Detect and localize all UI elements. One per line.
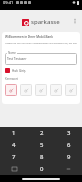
button[interactable]: PIN digit 3: [35, 84, 47, 96]
button[interactable]: 8: [28, 151, 55, 163]
staticText: Test Testuser: [7, 57, 27, 61]
button[interactable]: 2: [28, 127, 55, 139]
staticText: sparkasse: [31, 18, 60, 26]
button[interactable]: [0, 163, 28, 175]
button[interactable]: 0: [28, 163, 55, 175]
staticText: 5: [40, 141, 44, 149]
staticText: 6: [67, 141, 71, 149]
button[interactable]: PIN digit 5: [65, 84, 77, 96]
button[interactable]: 9: [55, 151, 82, 163]
staticText: 4: [12, 141, 16, 149]
staticText: 7: [12, 153, 16, 161]
staticText: 09:41: [3, 0, 14, 5]
staticText: 3: [67, 129, 71, 137]
button[interactable]: 5: [28, 139, 55, 151]
button[interactable]: 6: [55, 139, 82, 151]
button[interactable]: PIN digit 1: [5, 84, 17, 96]
staticText: Loggen Sie sich mit Ihrem Anmeldenamen u…: [5, 42, 77, 45]
button[interactable]: 3: [55, 127, 82, 139]
button[interactable]: 4: [0, 139, 28, 151]
button[interactable]: Hızlı Giriş: [5, 68, 26, 73]
button[interactable]: 1: [0, 127, 28, 139]
staticText: Willkommen in Ihrer Mobil-Bank: [5, 35, 53, 39]
button[interactable]: Test Testuser: [5, 53, 77, 65]
staticText: 1: [12, 129, 16, 137]
staticText: Kennwort: [5, 77, 18, 81]
staticText: 9: [67, 153, 71, 161]
staticText: Name: [8, 51, 16, 55]
staticText: 0: [40, 165, 44, 173]
button[interactable]: More options: [71, 17, 79, 25]
button[interactable]: [55, 163, 82, 175]
button[interactable]: PIN digit 4: [50, 84, 62, 96]
staticText: 2: [40, 129, 44, 137]
button[interactable]: 7: [0, 151, 28, 163]
staticText: Hızlı Giriş: [12, 69, 26, 73]
staticText: 8: [40, 153, 44, 161]
button[interactable]: PIN digit 2: [20, 84, 32, 96]
